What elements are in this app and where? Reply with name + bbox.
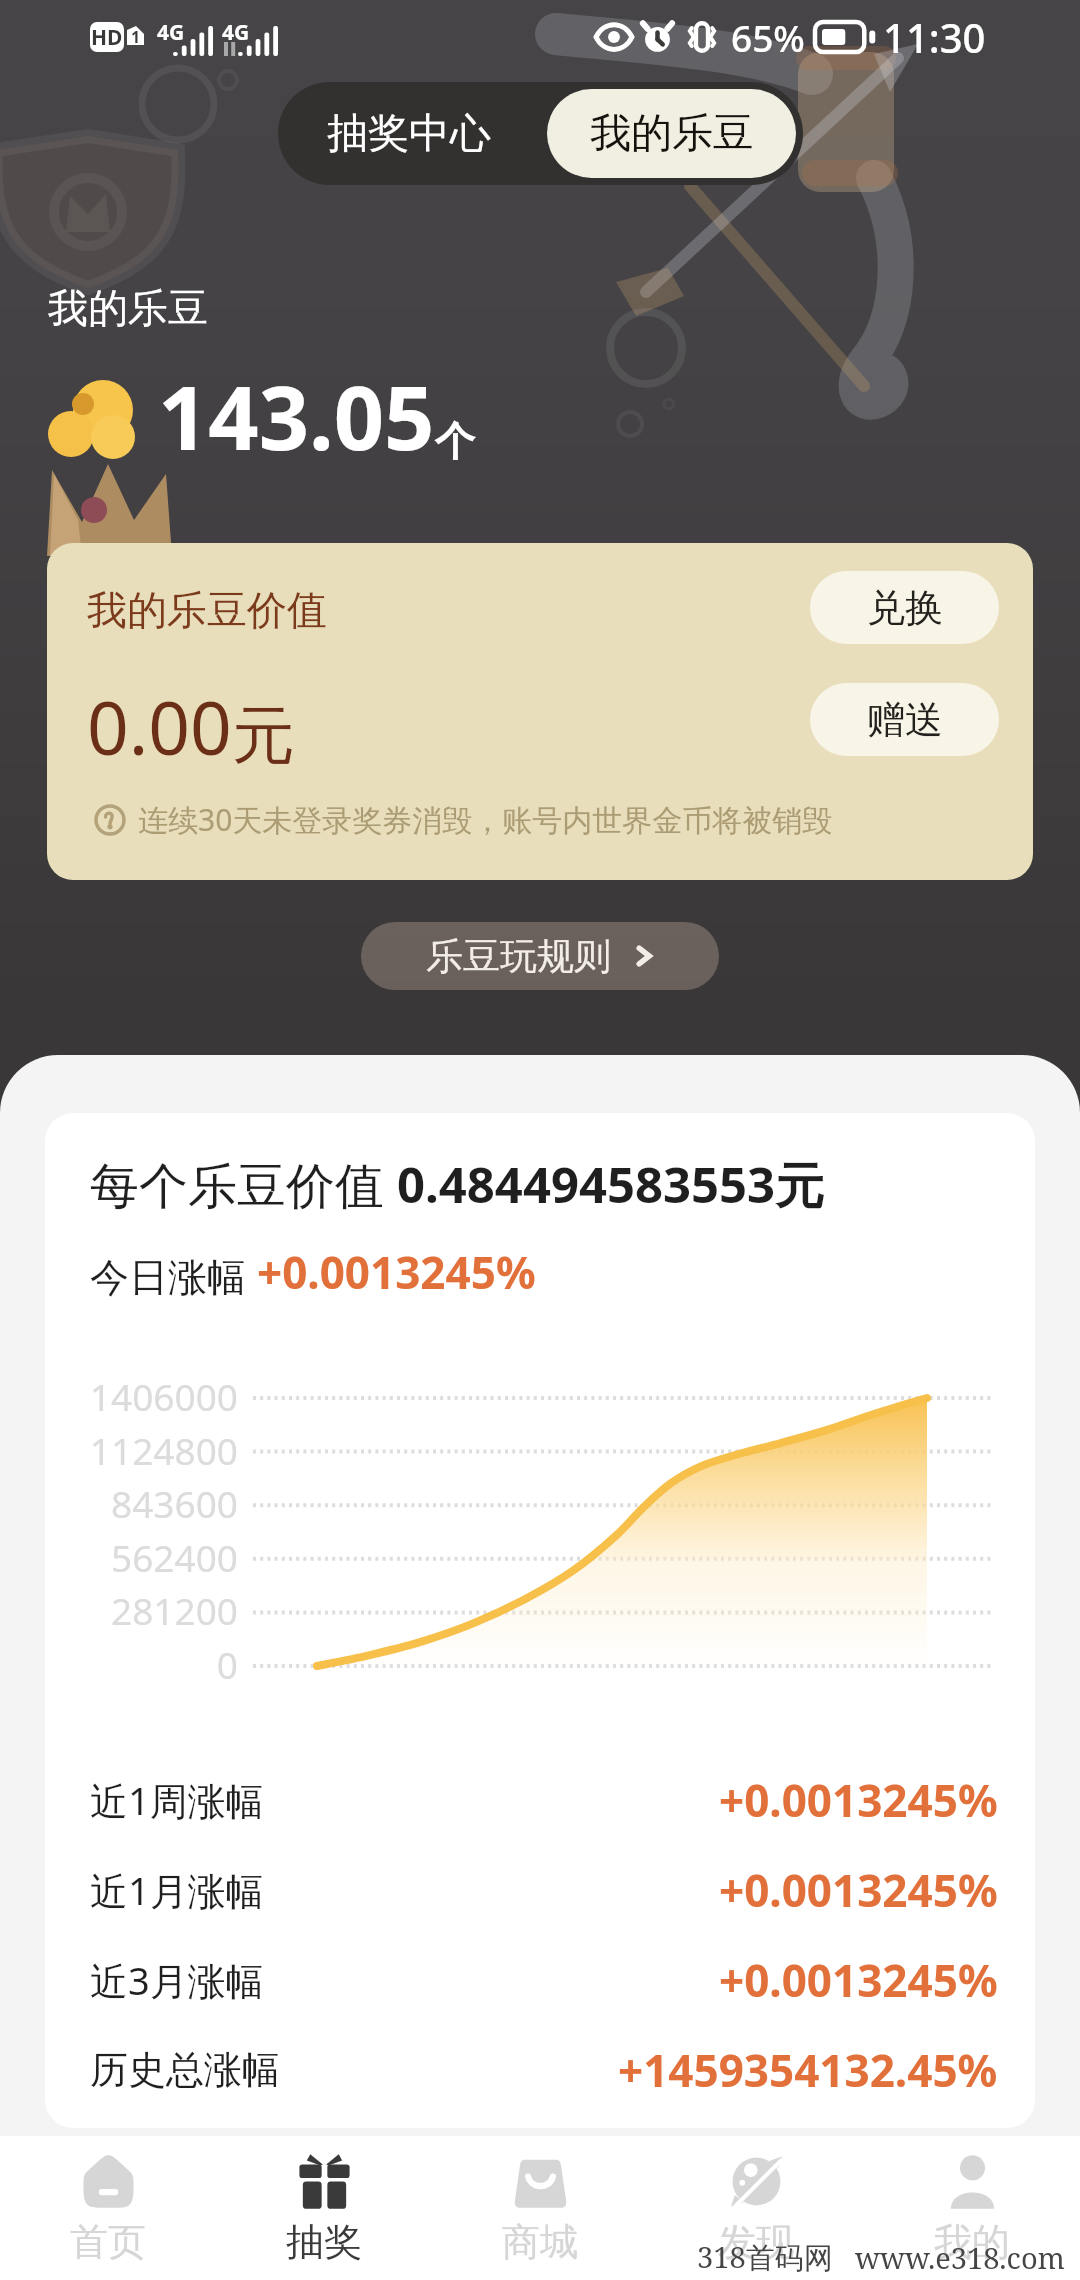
staticText: 11:30 — [883, 10, 986, 64]
button[interactable]: 近1周涨幅 — [45, 1755, 1035, 1845]
staticText: 个 — [435, 416, 475, 466]
staticText: 4G — [222, 18, 250, 47]
staticText: 连续30天未登录奖券消毁，账号内世界金币将被销毁 — [138, 799, 833, 840]
staticText: 4G — [157, 18, 185, 47]
staticText: 1 — [131, 26, 141, 48]
button[interactable]: 我的 — [864, 2136, 1080, 2280]
staticText: 0.484494583553元 — [397, 1151, 825, 1218]
staticText: 1124800 — [45, 1425, 238, 1475]
button[interactable]: 乐豆玩规则 — [361, 922, 719, 990]
button[interactable]: 抽奖中心 — [278, 82, 540, 185]
staticText: 843600 — [45, 1478, 238, 1528]
staticText: 143.05 — [158, 356, 435, 476]
staticText: 我的乐豆价值 — [87, 585, 327, 635]
staticText: 商城 — [502, 2218, 578, 2266]
staticText: 562400 — [45, 1532, 238, 1582]
staticText: 赠送 — [867, 696, 943, 744]
staticText: 我的 — [934, 2218, 1010, 2266]
button[interactable]: 发现 — [648, 2136, 864, 2280]
staticText: 0 — [45, 1639, 238, 1689]
staticText: 318首码网 — [697, 2237, 833, 2277]
button[interactable]: 近3月涨幅 — [45, 1935, 1035, 2025]
staticText: www.e318.com — [855, 2238, 1066, 2277]
button[interactable]: 商城 — [432, 2136, 648, 2280]
staticText: 近1月涨幅 — [90, 1864, 264, 1916]
staticText: +0.0013245% — [719, 1950, 998, 2010]
button[interactable]: 历史总涨幅 — [45, 2025, 1035, 2115]
staticText: 抽奖 — [286, 2218, 362, 2266]
staticText: 乐豆玩规则 — [426, 933, 611, 980]
staticText: 首页 — [70, 2218, 146, 2266]
button[interactable]: 首页 — [0, 2136, 216, 2280]
staticText: 历史总涨幅 — [90, 2046, 280, 2094]
staticText: 近3月涨幅 — [90, 1954, 264, 2006]
button[interactable]: 近1月涨幅 — [45, 1845, 1035, 1935]
button[interactable]: 抽奖 — [216, 2136, 432, 2280]
staticText: 元 — [232, 696, 295, 775]
button[interactable]: 我的乐豆 — [547, 89, 796, 178]
staticText: 今日涨幅 — [90, 1249, 257, 1302]
button[interactable]: 赠送 — [810, 683, 999, 756]
button[interactable]: 兑换 — [810, 571, 999, 644]
staticText: 我的乐豆 — [590, 108, 754, 160]
staticText: 281200 — [45, 1585, 238, 1635]
staticText: +0.0013245% — [719, 1860, 998, 1920]
staticText: +1459354132.45% — [618, 2040, 998, 2100]
staticText: 近1周涨幅 — [90, 1774, 264, 1826]
staticText: 1406000 — [45, 1371, 238, 1421]
staticText: 抽奖中心 — [327, 108, 491, 160]
staticText: HD — [91, 23, 123, 52]
staticText: +0.0013245% — [257, 1242, 536, 1302]
staticText: +0.0013245% — [719, 1770, 998, 1830]
staticText: 我的乐豆 — [48, 283, 208, 333]
staticText: 兑换 — [867, 584, 943, 632]
staticText: 0.00 — [87, 677, 232, 776]
staticText: 65% — [731, 12, 805, 62]
staticText: 发现 — [718, 2218, 794, 2266]
staticText: 每个乐豆价值 — [90, 1151, 397, 1218]
